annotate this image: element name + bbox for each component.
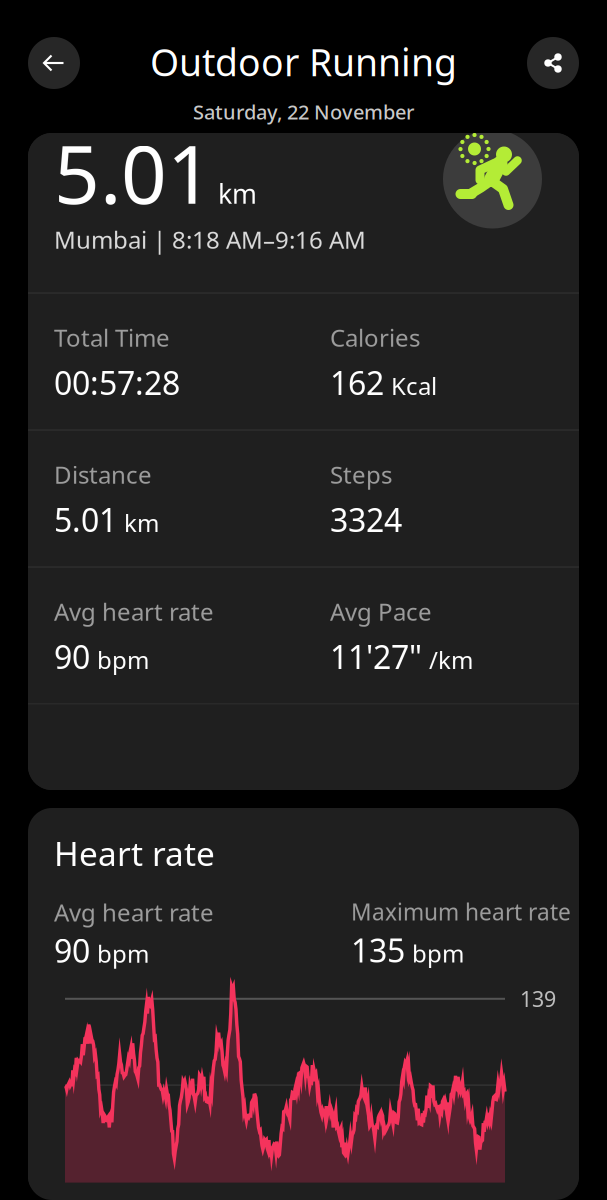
staticText: 11'27" (330, 635, 422, 678)
staticText: Total Time (54, 321, 170, 353)
staticText: Calories (330, 321, 420, 353)
staticText: km (124, 507, 159, 539)
staticText: Avg Pace (330, 595, 432, 627)
staticText: Avg heart rate (54, 896, 214, 928)
staticText: 5.01 (54, 498, 117, 541)
staticText: Heart rate (54, 831, 215, 875)
staticText: km (218, 176, 257, 211)
button[interactable]: Share (527, 37, 579, 89)
staticText: 90 (54, 929, 90, 972)
staticText: Outdoor Running (150, 37, 457, 87)
staticText: 5.01 (54, 119, 213, 226)
staticText: /km (429, 644, 473, 676)
staticText: 135 (351, 929, 405, 971)
button[interactable]: Back (28, 37, 80, 89)
staticText: Distance (54, 458, 152, 490)
staticText: Maximum heart rate (351, 897, 571, 927)
staticText: 90 (54, 635, 90, 678)
staticText: 139 (520, 985, 556, 1013)
staticText: 162 (330, 361, 384, 404)
staticText: Avg heart rate (54, 595, 214, 627)
staticText: bpm (97, 938, 149, 969)
staticText: 00:57:28 (54, 361, 180, 404)
staticText: Mumbai | 8:18 AM–9:16 AM (54, 223, 366, 255)
staticText: bpm (97, 644, 149, 676)
staticText: bpm (412, 937, 464, 969)
staticText: Saturday, 22 November (193, 99, 414, 125)
staticText: Steps (330, 458, 392, 490)
staticText: 3324 (330, 498, 402, 541)
staticText: Kcal (391, 370, 437, 402)
